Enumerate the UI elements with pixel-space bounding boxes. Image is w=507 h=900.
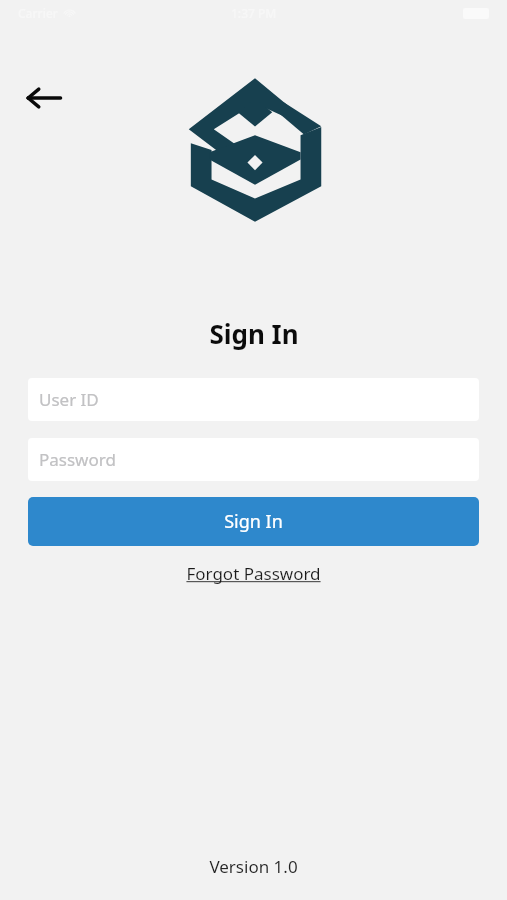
staticText: Sign In xyxy=(209,316,299,351)
button[interactable]: Sign In xyxy=(28,497,479,546)
staticText: Version 1.0 xyxy=(209,855,298,878)
staticText: Sign In xyxy=(224,509,283,534)
staticText: Forgot Password xyxy=(186,562,321,585)
button[interactable]: User ID xyxy=(28,378,479,421)
button[interactable]: Back xyxy=(16,74,72,122)
staticText: User ID xyxy=(39,388,99,411)
button[interactable]: Password xyxy=(28,438,479,481)
staticText: Password xyxy=(39,448,116,471)
button[interactable]: Forgot Password xyxy=(180,560,327,587)
